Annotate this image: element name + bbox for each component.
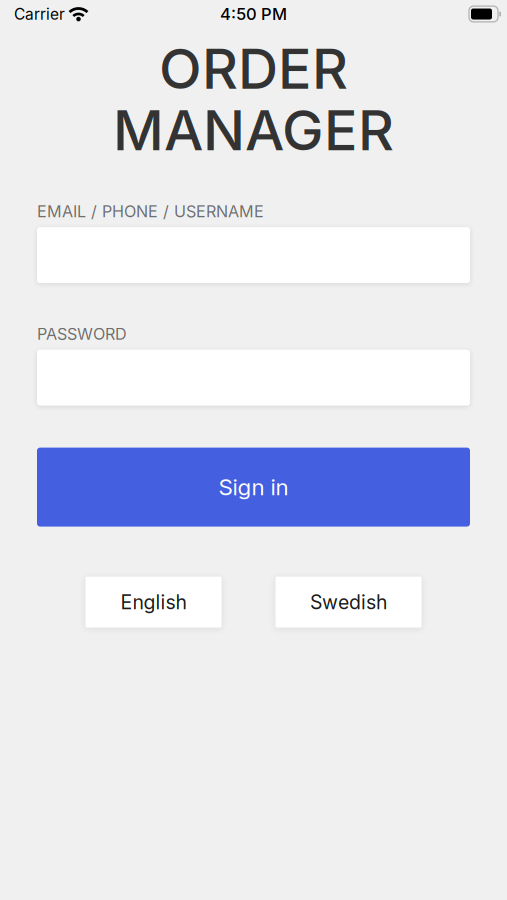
staticText: Carrier [14,5,65,23]
button[interactable]: Swedish [275,577,421,628]
staticText: Swedish [310,590,387,614]
staticText: PASSWORD [37,324,127,344]
staticText: 4:50 PM [220,4,287,24]
button[interactable]: Sign in [37,448,470,527]
button[interactable]: English [85,577,221,628]
staticText: EMAIL / PHONE / USERNAME [37,201,264,221]
staticText: MANAGER [113,96,394,164]
staticText: Sign in [218,473,288,501]
staticText: ORDER [159,35,348,102]
staticText: English [120,590,186,614]
